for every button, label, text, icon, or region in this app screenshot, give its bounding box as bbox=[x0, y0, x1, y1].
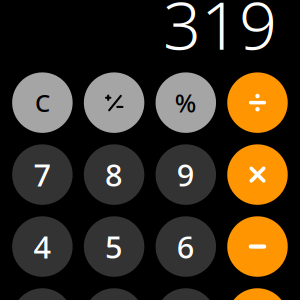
button[interactable]: 7 bbox=[12, 144, 73, 205]
staticText: 4 bbox=[33, 226, 51, 267]
button[interactable]: 1 bbox=[12, 288, 73, 300]
button[interactable]: C bbox=[12, 72, 73, 133]
button[interactable]: 4 bbox=[12, 216, 73, 277]
button[interactable]: 3 bbox=[156, 288, 216, 300]
staticText: 6 bbox=[177, 226, 195, 267]
button[interactable]: 2 bbox=[84, 288, 144, 300]
button[interactable]: Multiply bbox=[227, 144, 288, 205]
button[interactable]: 6 bbox=[156, 216, 216, 277]
staticText: 9 bbox=[177, 154, 195, 195]
button[interactable]: 8 bbox=[84, 144, 144, 205]
button[interactable]: Divide bbox=[227, 72, 288, 133]
staticText: 7 bbox=[33, 154, 51, 195]
staticText: % bbox=[175, 86, 197, 119]
button[interactable]: Toggle sign bbox=[84, 72, 144, 133]
button[interactable]: % bbox=[156, 72, 216, 133]
staticText: 8 bbox=[105, 154, 123, 195]
button[interactable]: 5 bbox=[84, 216, 144, 277]
button[interactable]: 9 bbox=[156, 144, 216, 205]
staticText: C bbox=[35, 87, 50, 119]
button[interactable]: Subtract bbox=[227, 216, 288, 277]
staticText: 5 bbox=[105, 226, 123, 267]
staticText: 319 bbox=[163, 0, 277, 68]
button[interactable]: Add bbox=[227, 288, 288, 300]
